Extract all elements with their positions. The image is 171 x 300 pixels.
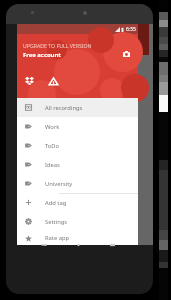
staticText: Add tag xyxy=(45,199,67,207)
staticText: All recordings xyxy=(45,104,83,112)
staticText: 6:55 xyxy=(126,26,136,33)
button[interactable]: All recordings xyxy=(17,98,138,117)
staticText: Free account xyxy=(23,51,61,59)
button[interactable]: Settings xyxy=(17,212,138,231)
button[interactable]: Camera xyxy=(121,49,131,59)
button[interactable]: University xyxy=(17,174,138,193)
button[interactable]: Work xyxy=(17,117,138,136)
button[interactable]: Ideas xyxy=(17,155,138,174)
button[interactable]: Add tag xyxy=(17,193,138,212)
button[interactable]: Google Drive xyxy=(49,77,58,86)
button[interactable]: ToDo xyxy=(17,136,138,155)
button[interactable]: Rate app xyxy=(17,231,138,245)
staticText: Ideas xyxy=(45,161,60,169)
staticText: Settings xyxy=(45,218,68,226)
staticText: Work xyxy=(45,123,60,131)
staticText: University xyxy=(45,180,73,188)
staticText: UPGRADE TO FULL VERSION xyxy=(23,42,92,49)
staticText: Rate app xyxy=(45,234,70,242)
staticText: ToDo xyxy=(45,142,60,150)
button[interactable]: Dropbox xyxy=(25,76,34,85)
